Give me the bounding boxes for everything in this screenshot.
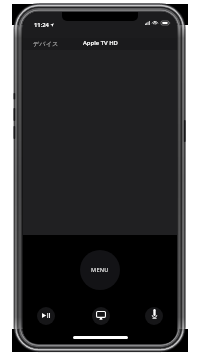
staticText: MENU bbox=[91, 266, 109, 274]
button[interactable]: TV bbox=[92, 307, 110, 325]
button[interactable]: MENU bbox=[80, 250, 120, 290]
button[interactable]: Play pause bbox=[37, 307, 55, 325]
button[interactable]: デバイス bbox=[31, 38, 61, 50]
staticText: デバイス bbox=[33, 40, 59, 48]
staticText: 11:24 bbox=[34, 21, 49, 29]
staticText: Apple TV HD bbox=[83, 39, 118, 47]
button[interactable]: Siri bbox=[145, 307, 163, 325]
